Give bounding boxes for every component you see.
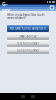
staticText: Telefonnummer <box>17 42 39 45</box>
button[interactable]: E-Mail-Adresse <box>0 33 49 40</box>
staticText: E-Mail-Adresse <box>18 35 37 38</box>
staticText: Kundennummer <box>16 49 39 52</box>
button[interactable]: Account <box>48 4 56 11</box>
staticText: Wie möchten Sie sich <box>7 12 44 17</box>
button[interactable]: Mit GMX Konto anmelden <box>0 25 49 32</box>
staticText: Mit GMX Konto anmelden <box>10 27 46 30</box>
button[interactable]: Recents <box>28 93 38 100</box>
button[interactable]: Kundennummer <box>0 47 49 54</box>
staticText: GMX <box>2 0 11 15</box>
button[interactable]: Home <box>18 93 28 100</box>
button[interactable]: GMX <box>0 4 12 11</box>
button[interactable]: Telefonnummer <box>0 40 49 47</box>
staticText: anmelden? <box>7 15 26 20</box>
